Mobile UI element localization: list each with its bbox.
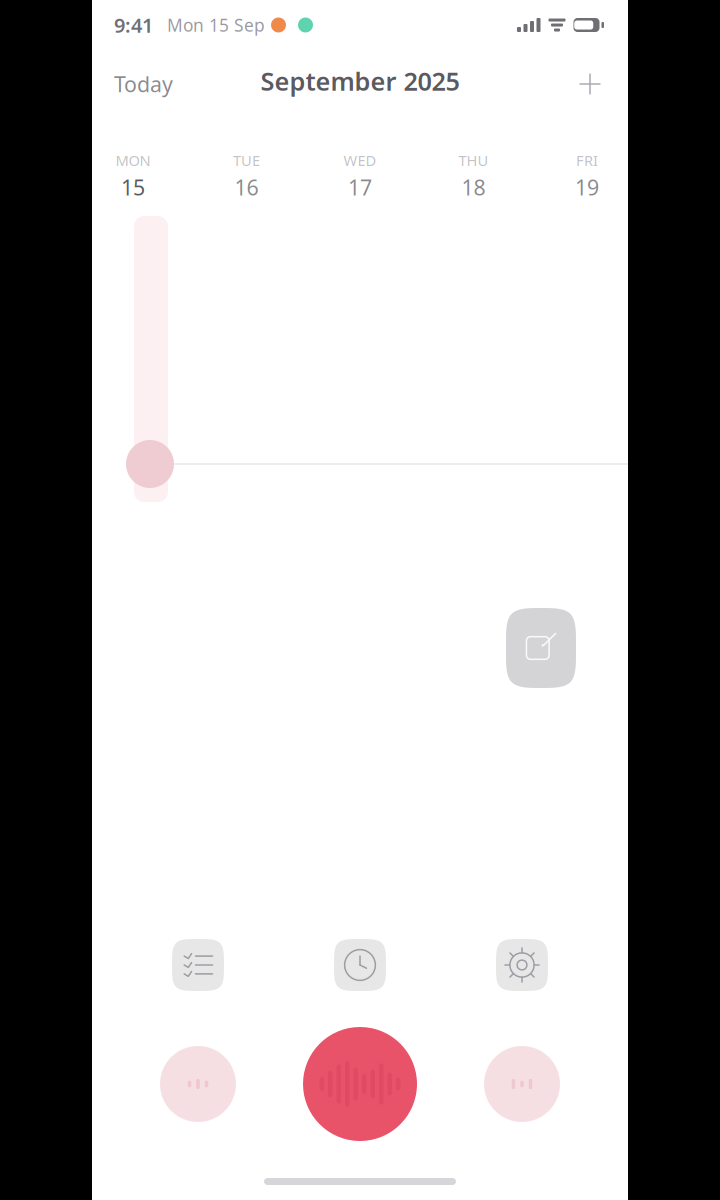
button[interactable]: WED [303,154,417,198]
button[interactable]: Entries [117,930,279,1000]
button[interactable]: Add event [574,56,628,112]
staticText: 18 [461,173,485,201]
staticText: MON [115,151,150,170]
staticText: September 2025 [260,64,459,98]
staticText: 17 [348,173,372,201]
button[interactable]: Today [92,56,173,112]
button[interactable]: Settings [441,930,603,1000]
staticText: 16 [234,173,258,201]
button[interactable]: TUE [190,154,303,198]
button[interactable]: New entry [506,608,576,688]
staticText: 19 [575,173,599,201]
staticText: FRI [576,151,598,170]
staticText: Mon 15 Sep [167,13,265,36]
button[interactable]: FRI [530,154,644,198]
button[interactable]: Skip forward [441,1000,603,1168]
staticText: THU [458,151,488,170]
staticText: 9:41 [114,12,153,38]
button[interactable]: MON [76,154,190,198]
button[interactable]: History [279,930,441,1000]
staticText: Today [114,70,173,98]
button[interactable]: THU [417,154,530,198]
staticText: 15 [121,173,145,201]
button[interactable]: Record [279,1000,441,1168]
staticText: WED [343,151,376,170]
staticText: TUE [233,151,260,170]
button[interactable]: Skip back [117,1000,279,1168]
